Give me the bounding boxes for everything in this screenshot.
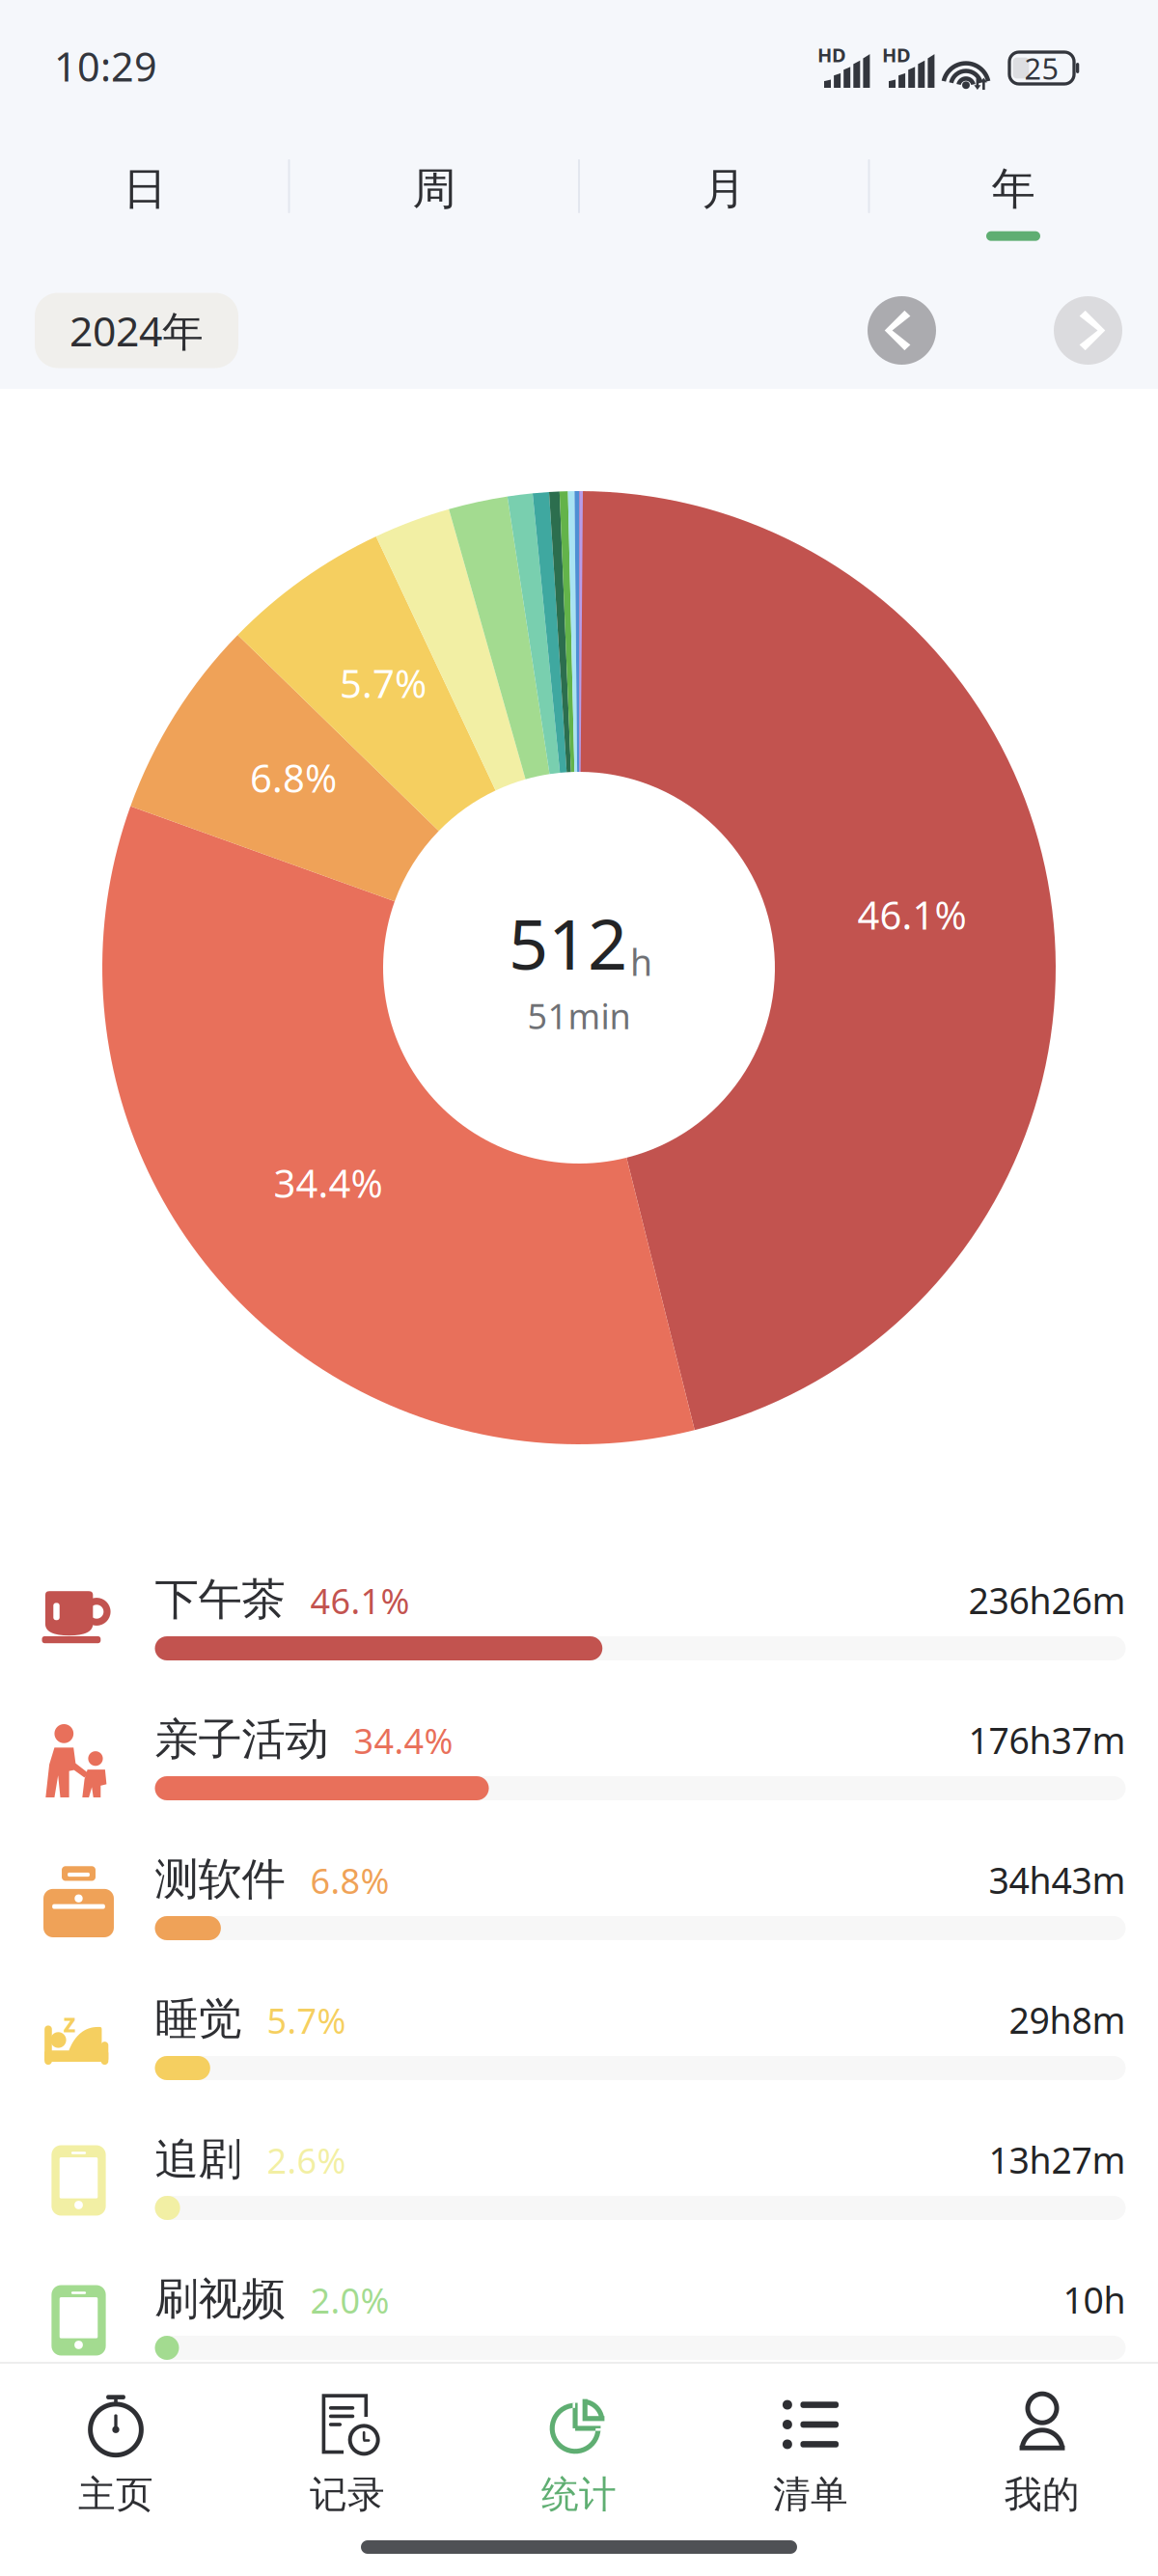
button[interactable]: Previous year [868,296,936,365]
button[interactable]: 刷视频 [0,2261,1158,2400]
staticText: h [630,938,652,986]
staticText: 51min [527,993,631,1039]
button[interactable]: 统计 [463,2364,695,2518]
staticText: 年 [992,162,1035,216]
staticText: 清单 [773,2472,848,2518]
button[interactable]: 我的 [926,2364,1158,2518]
staticText: 睡觉 [155,1992,242,2046]
staticText: 月 [702,162,745,216]
staticText: 512 [509,897,627,989]
button[interactable]: 记录 [232,2364,463,2518]
staticText: 10h [1063,2276,1126,2324]
staticText: 46.1% [310,1578,410,1624]
staticText: 日 [123,162,166,216]
staticText: HD [882,42,911,68]
button[interactable]: 追剧 [0,2121,1158,2261]
button[interactable]: z [0,1981,1158,2121]
button[interactable]: 主页 [0,2364,232,2518]
staticText: 25 [1024,48,1059,88]
button[interactable]: 日 [0,100,289,272]
button[interactable]: 周 [289,100,579,272]
staticText: 236h26m [968,1576,1126,1624]
staticText: 176h37m [968,1716,1126,1764]
staticText: 2.6% [267,2137,346,2183]
staticText: 主页 [78,2472,153,2518]
staticText: 统计 [541,2472,617,2518]
button[interactable]: 月 [579,100,868,272]
staticText: 2024年 [69,303,204,358]
staticText: 6.8% [250,752,337,803]
staticText: 追剧 [155,2132,242,2186]
button[interactable]: 下午茶 [0,1561,1158,1701]
staticText: 5.7% [267,1997,346,2043]
staticText: 6.8% [310,1857,389,1904]
staticText: 34h43m [989,1856,1126,1904]
button[interactable]: Next year [1054,296,1122,365]
button[interactable]: 2024年 [35,293,238,368]
staticText: 34.4% [354,1718,453,1764]
staticText: 测软件 [155,1853,285,1906]
staticText: 亲子活动 [155,1713,329,1766]
staticText: 下午茶 [155,1573,285,1627]
button[interactable]: 年 [868,100,1158,272]
staticText: 我的 [1005,2472,1080,2518]
staticText: 5.7% [340,657,427,709]
staticText: 刷视频 [155,2272,285,2326]
button[interactable]: 亲子活动 [0,1701,1158,1841]
staticText: z [63,2005,76,2039]
staticText: 29h8m [1009,1996,1126,2044]
button[interactable]: 清单 [695,2364,926,2518]
staticText: 46.1% [857,889,966,940]
staticText: 34.4% [274,1157,383,1208]
staticText: HD [817,42,846,68]
staticText: 10:29 [54,40,157,93]
staticText: 记录 [310,2472,385,2518]
staticText: 周 [413,162,456,216]
staticText: 13h27m [989,2136,1126,2184]
staticText: 2.0% [310,2277,389,2323]
button[interactable]: 测软件 [0,1841,1158,1981]
